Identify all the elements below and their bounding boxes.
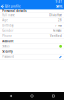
staticText: Security: [2, 50, 13, 53]
staticText: Gender: [2, 29, 13, 32]
staticText: Password: [2, 55, 14, 58]
staticText: 7 Mar: [55, 24, 62, 27]
staticText: Personal details: [2, 9, 26, 13]
button[interactable]: Back: [0, 3, 5, 9]
staticText: Olivia Hart: [49, 13, 62, 17]
staticText: Account: [2, 39, 13, 43]
staticText: 9:41: [55, 0, 62, 3]
button[interactable]: Back: [0, 92, 21, 100]
staticText: Phone: [2, 34, 12, 38]
button[interactable]: Full name: [0, 13, 64, 18]
button[interactable]: Status: [0, 44, 64, 49]
button[interactable]: Birthday: [0, 23, 64, 28]
staticText: Age: [2, 19, 8, 22]
staticText: Edit profile: [5, 5, 21, 8]
button[interactable]: Phone: [0, 33, 64, 39]
staticText: Status: [2, 45, 9, 48]
button[interactable]: Recents: [43, 92, 64, 100]
button[interactable]: Home: [21, 92, 43, 100]
staticText: Verified: [50, 34, 62, 38]
staticText: Full name: [2, 13, 15, 17]
staticText: 28: [58, 19, 62, 22]
button[interactable]: SAVE: [56, 3, 64, 9]
button[interactable]: Gender: [0, 28, 64, 33]
staticText: SAVE: [56, 5, 62, 8]
button[interactable]: Password: [0, 54, 64, 59]
button[interactable]: Age: [0, 18, 64, 23]
staticText: Birthday: [2, 24, 13, 27]
staticText: Female: [53, 29, 62, 32]
